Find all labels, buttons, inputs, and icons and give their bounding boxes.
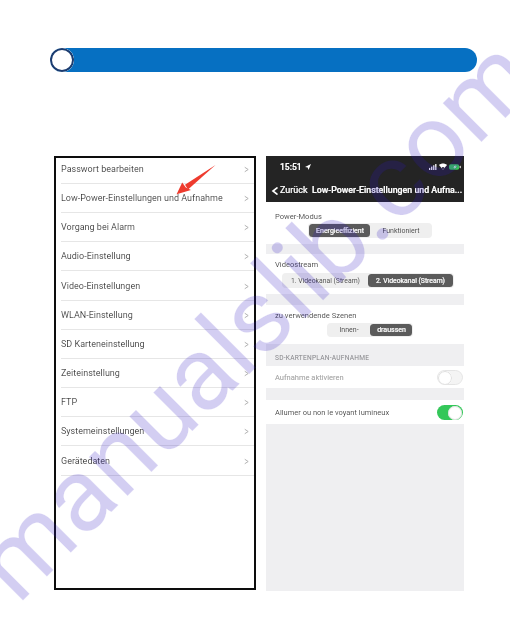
button[interactable]: 2. Videokanal (Stream)	[368, 274, 453, 287]
button[interactable]: Low-Power-Einstellungen und Aufnahme	[54, 184, 256, 213]
staticText: Zeiteinstellung	[61, 368, 243, 379]
button[interactable]: Switch on	[437, 405, 463, 420]
button[interactable]: Audio-Einstellung	[54, 242, 256, 271]
staticText: Vorgang bei Alarm	[61, 222, 243, 233]
staticText: Power-Modus	[275, 212, 322, 221]
staticText: Aufnahme aktivieren	[275, 373, 437, 382]
staticText: 2. Videokanal (Stream)	[376, 277, 445, 285]
button[interactable]: Video-Einstellungen	[54, 272, 256, 301]
button[interactable]: Zeiteinstellung	[54, 359, 256, 388]
button[interactable]: FTP	[54, 388, 256, 417]
button[interactable]: Vorgang bei Alarm	[54, 213, 256, 242]
button[interactable]: Aufnahme aktivieren	[275, 366, 463, 388]
staticText: 15:51	[280, 162, 302, 172]
staticText: manualslib.com	[0, 14, 510, 624]
button[interactable]: SD Karteneinstellung	[54, 330, 256, 359]
button[interactable]: Systemeinstellungen	[54, 417, 256, 446]
staticText: Audio-Einstellung	[61, 251, 243, 262]
staticText: Videostream	[275, 260, 319, 269]
button[interactable]: 1. Videokanal (Stream)	[283, 274, 368, 287]
staticText: Low-Power-Einstellungen und Aufnahme	[61, 193, 243, 204]
staticText: Energieeffizient	[316, 227, 364, 235]
button[interactable]: draussen	[370, 324, 412, 336]
staticText: Innen-	[339, 326, 359, 334]
staticText: Systemeinstellungen	[61, 426, 243, 437]
button[interactable]: Passwort bearbeiten	[54, 155, 256, 184]
button[interactable]: Switch off	[437, 370, 463, 385]
staticText: draussen	[377, 326, 406, 334]
button[interactable]: Funktioniert	[370, 224, 431, 237]
button[interactable]: Back	[270, 185, 308, 196]
button[interactable]: Allumer ou non le voyant lumineux	[275, 400, 463, 424]
staticText: SD Karteneinstellung	[61, 339, 243, 350]
button[interactable]: Gerätedaten	[54, 447, 256, 476]
staticText: FTP	[61, 397, 243, 408]
staticText: WLAN-Einstellung	[61, 310, 243, 321]
button[interactable]: Innen-	[328, 324, 370, 336]
staticText: SD-KARTENPLAN-AUFNAHME	[275, 354, 370, 362]
button[interactable]: Section title bar	[50, 48, 477, 72]
staticText: Passwort bearbeiten	[61, 164, 243, 175]
staticText: Allumer ou non le voyant lumineux	[275, 408, 437, 417]
staticText: Zurück	[280, 185, 308, 196]
staticText: 1. Videokanal (Stream)	[291, 277, 360, 285]
staticText: Funktioniert	[382, 227, 420, 235]
staticText: zu verwendende Szenen	[275, 311, 357, 320]
staticText: Video-Einstellungen	[61, 281, 243, 292]
staticText: Low-Power-Einstellungen und Aufna...	[312, 185, 463, 195]
button[interactable]: WLAN-Einstellung	[54, 301, 256, 330]
button[interactable]: Energieeffizient	[309, 224, 370, 237]
staticText: Gerätedaten	[61, 456, 243, 467]
